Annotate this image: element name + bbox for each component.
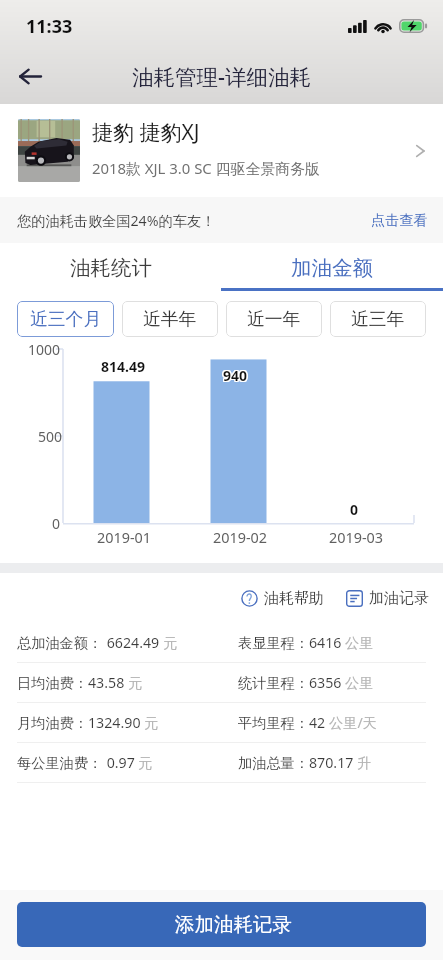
- staticText: 元: [138, 754, 153, 772]
- button[interactable]: 近三年: [330, 301, 426, 337]
- staticText: 日均油费：: [17, 674, 88, 692]
- staticText: 每公里油费：: [17, 754, 103, 772]
- staticText: 0.97: [103, 753, 135, 772]
- staticText: 近三年: [351, 308, 405, 330]
- staticText: 油耗管理-详细油耗: [132, 62, 311, 91]
- button[interactable]: 近一年: [226, 301, 322, 337]
- staticText: 1324.90: [88, 713, 141, 732]
- button[interactable]: 近三个月: [17, 301, 114, 337]
- staticText: 统计里程：: [238, 674, 309, 692]
- staticText: 添加油耗记录: [175, 912, 292, 937]
- button[interactable]: 油耗帮助: [237, 583, 328, 614]
- staticText: 元: [128, 674, 143, 692]
- staticText: 平均里程：: [238, 714, 309, 732]
- staticText: 捷豹 捷豹XJ: [92, 118, 200, 147]
- staticText: 表显里程：: [238, 634, 309, 652]
- staticText: 940: [224, 366, 249, 385]
- button[interactable]: 点击查看: [356, 201, 443, 239]
- staticText: 点击查看: [371, 211, 428, 229]
- staticText: 2019-01: [66, 528, 182, 548]
- staticText: 您的油耗击败全国24%的车友！: [17, 211, 216, 230]
- staticText: 公里/天: [329, 713, 377, 732]
- staticText: 升: [357, 754, 372, 772]
- button[interactable]: 加油记录: [342, 583, 433, 614]
- button[interactable]: 捷豹 捷豹XJ: [0, 104, 443, 197]
- staticText: 940: [223, 366, 248, 385]
- staticText: 油耗统计: [70, 255, 152, 281]
- button[interactable]: 近半年: [122, 301, 218, 337]
- staticText: 42: [309, 713, 326, 732]
- staticText: 11:33: [26, 14, 73, 39]
- button[interactable]: Back: [6, 52, 54, 100]
- staticText: 6416: [309, 633, 342, 652]
- staticText: 近一年: [247, 308, 301, 330]
- staticText: 940: [222, 365, 247, 384]
- staticText: 1000: [28, 340, 61, 359]
- staticText: 加油记录: [369, 589, 429, 608]
- staticText: 月均油费：: [17, 714, 88, 732]
- staticText: 814.49: [101, 357, 145, 376]
- staticText: 0: [52, 514, 61, 533]
- staticText: 公里: [345, 674, 374, 692]
- staticText: 6624.49: [103, 633, 160, 652]
- staticText: 0: [350, 500, 359, 519]
- staticText: 2019-02: [182, 528, 298, 548]
- staticText: 元: [144, 714, 159, 732]
- staticText: 870.17: [309, 753, 354, 772]
- staticText: 近三个月: [30, 308, 102, 330]
- staticText: 940: [224, 365, 249, 384]
- staticText: 940: [224, 367, 249, 386]
- staticText: 940: [222, 367, 247, 386]
- staticText: 公里: [345, 634, 374, 652]
- staticText: 940: [222, 366, 247, 385]
- staticText: 元: [163, 634, 178, 652]
- button[interactable]: 加油金额: [221, 243, 443, 291]
- staticText: 加油总量：: [238, 754, 309, 772]
- button[interactable]: 油耗统计: [0, 243, 221, 291]
- staticText: 总加油金额：: [17, 634, 103, 652]
- staticText: 500: [38, 427, 63, 446]
- staticText: 43.58: [88, 673, 125, 692]
- staticText: 2019-03: [298, 528, 414, 548]
- staticText: 油耗帮助: [264, 589, 324, 608]
- staticText: 2018款 XJL 3.0 SC 四驱全景商务版: [92, 158, 320, 178]
- button[interactable]: 添加油耗记录: [17, 902, 426, 947]
- staticText: 近半年: [143, 308, 197, 330]
- staticText: 940: [223, 365, 248, 384]
- other: More: [411, 142, 429, 160]
- staticText: 加油金额: [291, 255, 373, 281]
- staticText: 940: [223, 367, 248, 386]
- staticText: 6356: [309, 673, 342, 692]
